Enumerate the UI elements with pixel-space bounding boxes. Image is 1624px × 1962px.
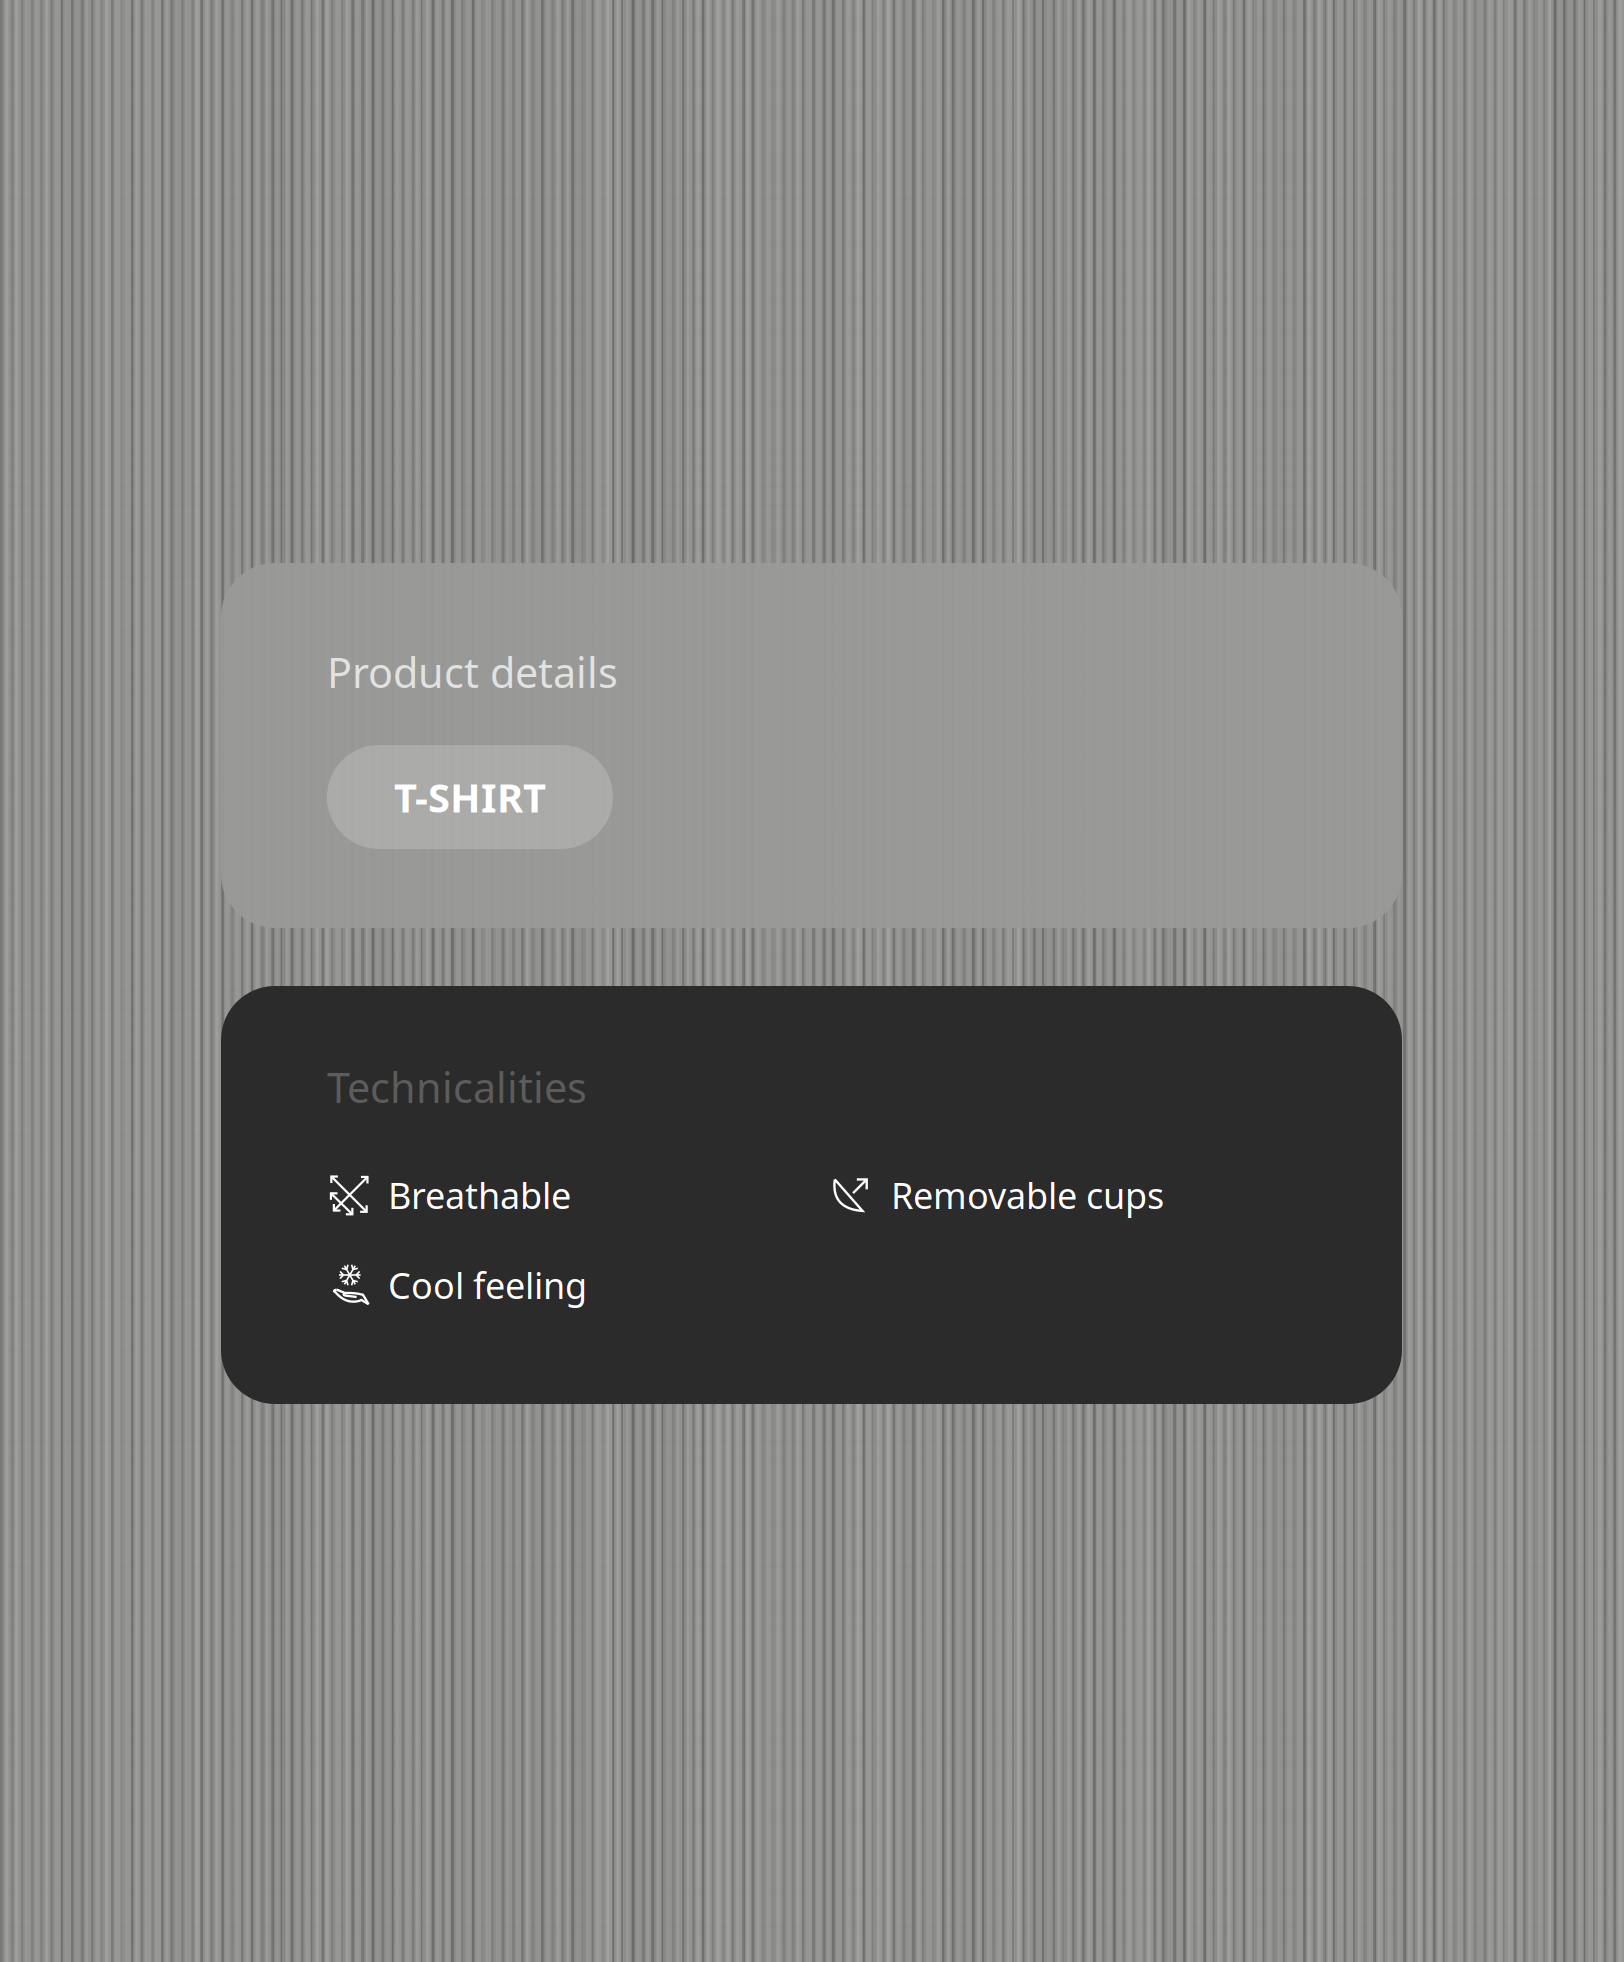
staticText: Breathable bbox=[388, 1171, 571, 1219]
staticText: Removable cups bbox=[891, 1171, 1164, 1219]
staticText: T-SHIRT bbox=[394, 770, 546, 823]
button[interactable]: T-SHIRT bbox=[327, 745, 613, 849]
staticText: Product details bbox=[327, 645, 618, 699]
staticText: Technicalities bbox=[327, 1060, 587, 1114]
staticText: Cool feeling bbox=[388, 1261, 587, 1309]
